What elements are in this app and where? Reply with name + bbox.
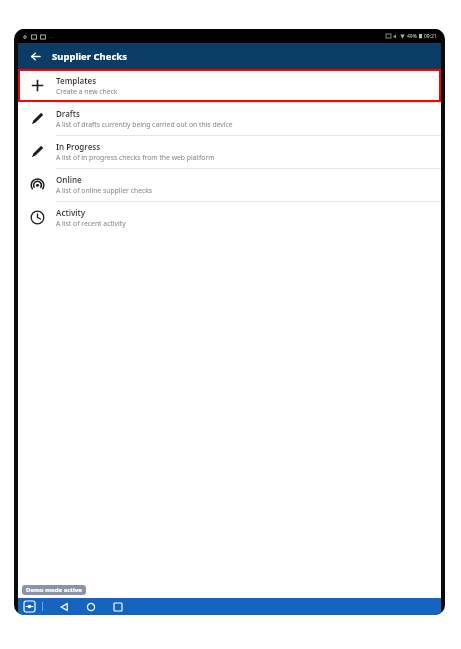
- staticText: Supplier Checks: [52, 50, 127, 63]
- button[interactable]: Close: [437, 14, 453, 30]
- staticText: Demo mode active: [26, 586, 82, 594]
- staticText: A list of online supplier checks: [56, 186, 153, 195]
- button[interactable]: In Progress: [18, 135, 441, 168]
- button[interactable]: Online: [18, 168, 441, 201]
- staticText: Online: [56, 174, 82, 185]
- button[interactable]: Drafts: [18, 102, 441, 135]
- staticText: ...: [49, 33, 54, 40]
- staticText: A list of drafts currently being carried…: [56, 120, 233, 129]
- button[interactable]: Back: [57, 600, 71, 614]
- button[interactable]: Accessibility menu: [23, 600, 36, 613]
- button[interactable]: Open in new window: [414, 14, 430, 30]
- button[interactable]: Activity: [18, 201, 441, 234]
- staticText: Activity: [56, 207, 86, 218]
- staticText: In Progress: [56, 141, 101, 152]
- staticText: A list of in progress checks from the we…: [56, 153, 215, 162]
- button[interactable]: Back: [26, 47, 44, 65]
- staticText: Drafts: [56, 108, 81, 119]
- staticText: A list of recent activity: [56, 219, 126, 228]
- staticText: Templates: [56, 75, 97, 86]
- staticText: Create a new check: [56, 87, 118, 96]
- button[interactable]: Recent apps: [111, 600, 125, 614]
- button[interactable]: Home: [84, 600, 98, 614]
- staticText: 09:21: [424, 33, 437, 40]
- staticText: 49%: [407, 33, 417, 40]
- button[interactable]: Templates: [18, 69, 441, 102]
